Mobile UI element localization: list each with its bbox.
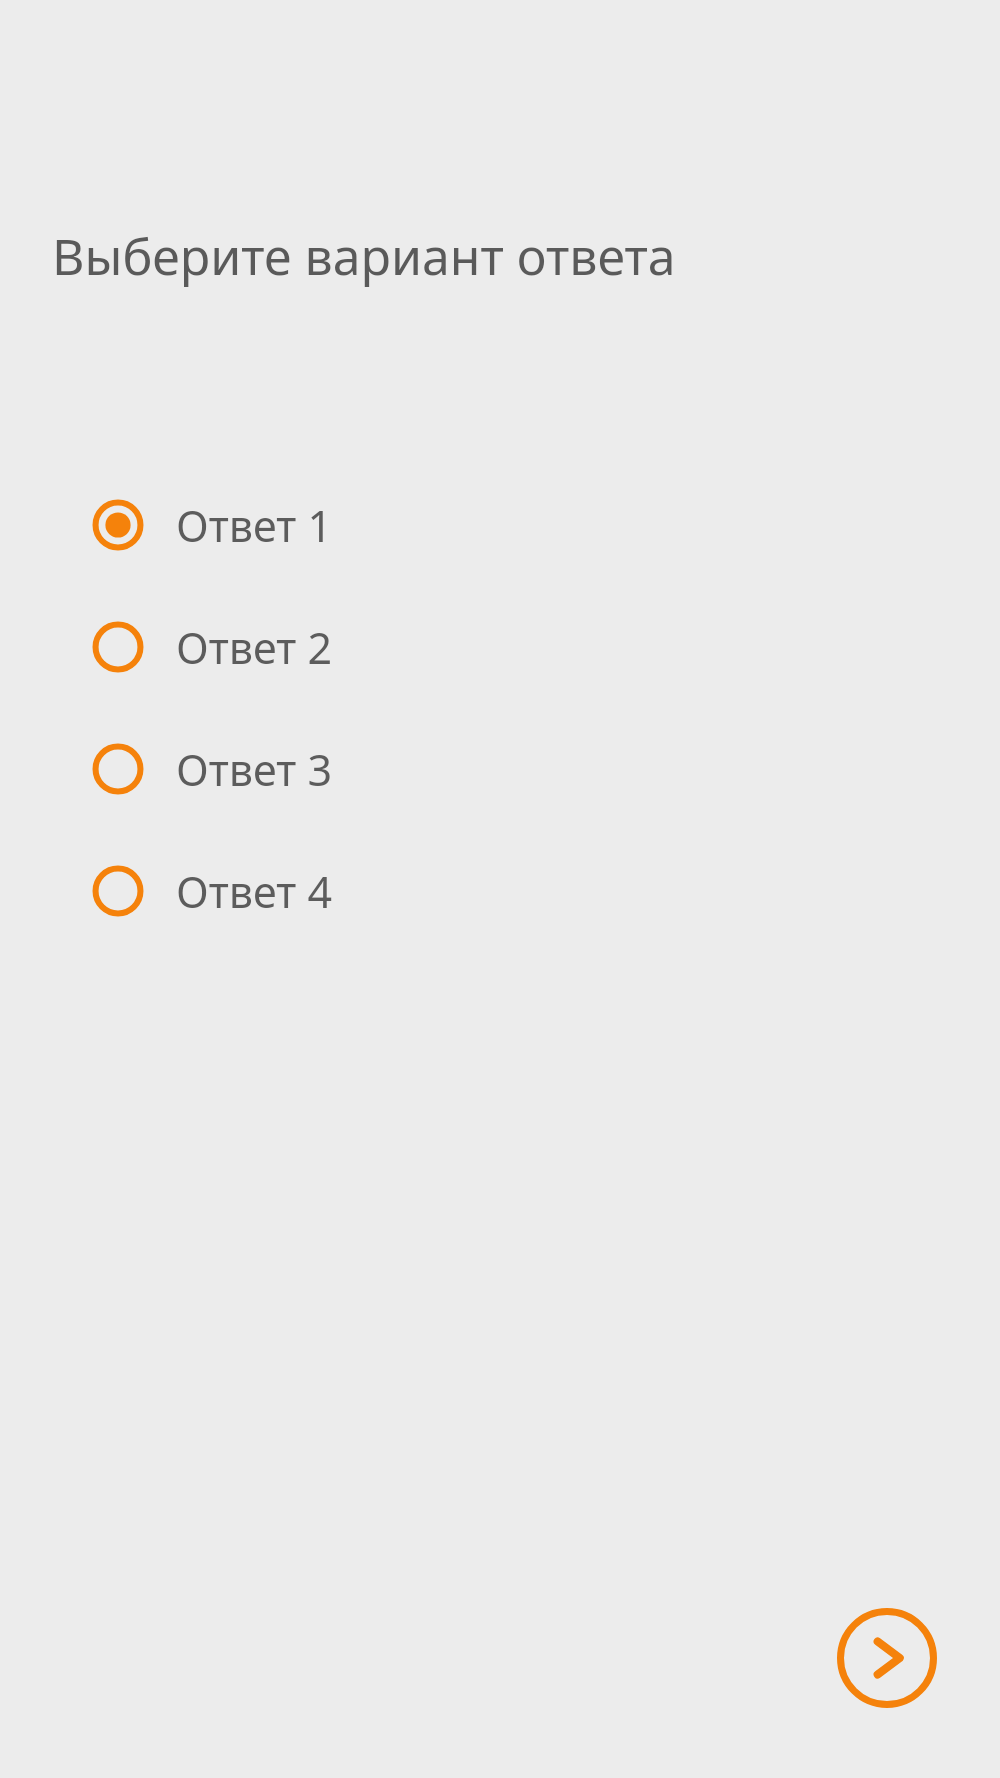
staticText: Выберите вариант ответа	[52, 222, 676, 290]
button[interactable]: Ответ 4	[0, 830, 1000, 952]
staticText: Ответ 1	[176, 496, 333, 555]
button[interactable]: Ответ 1	[0, 464, 1000, 586]
button[interactable]: Далее	[837, 1608, 937, 1708]
button[interactable]: Ответ 3	[0, 708, 1000, 830]
staticText: Ответ 3	[176, 740, 333, 799]
button[interactable]: Ответ 2	[0, 586, 1000, 708]
staticText: Ответ 2	[176, 618, 333, 677]
staticText: Ответ 4	[176, 862, 333, 921]
